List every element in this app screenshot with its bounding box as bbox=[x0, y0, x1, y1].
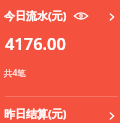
button[interactable]: Open today's transactions bbox=[104, 9, 120, 25]
staticText: 4176.00 bbox=[5, 32, 66, 54]
button[interactable]: Toggle amount visibility bbox=[72, 9, 90, 22]
staticText: 共4笔 bbox=[4, 67, 26, 78]
staticText: 昨日结算(元) bbox=[4, 106, 67, 121]
staticText: 今日流水(元) bbox=[4, 8, 67, 23]
button[interactable]: 昨日结算(元) bbox=[0, 97, 120, 123]
